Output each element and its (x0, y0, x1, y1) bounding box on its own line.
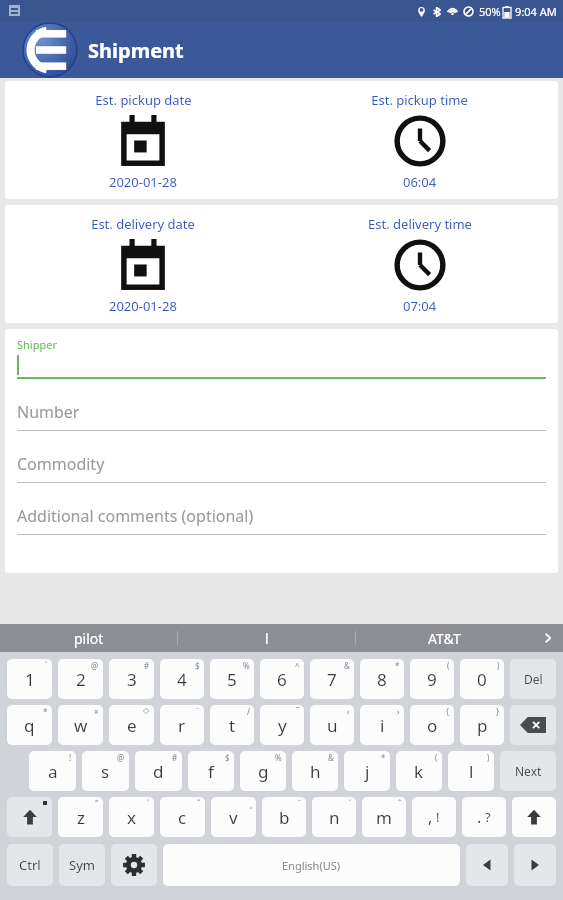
button[interactable]: c (160, 797, 205, 837)
button[interactable]: Est. delivery date (5, 205, 281, 323)
staticText: # (172, 752, 178, 763)
button[interactable]: Additional comments (optional) (17, 483, 546, 535)
button[interactable]: 5 (210, 659, 254, 699)
staticText: o (427, 714, 438, 737)
button[interactable]: Est. delivery time (281, 205, 558, 323)
button[interactable]: 6 (260, 659, 304, 699)
button[interactable]: Move cursor left (466, 844, 508, 886)
button[interactable]: Number (17, 379, 546, 431)
staticText: g (258, 760, 269, 783)
button[interactable]: p (460, 705, 504, 745)
button[interactable]: AT&T (356, 624, 533, 652)
button[interactable]: More suggestions (533, 624, 563, 652)
button[interactable]: English(US) (163, 844, 460, 886)
staticText: ¸ (250, 798, 252, 809)
staticText: ^ (295, 660, 300, 671)
staticText: 9 (427, 668, 437, 691)
button[interactable]: l (178, 624, 355, 652)
staticText: $ (225, 752, 230, 763)
staticText: & (344, 660, 350, 671)
staticText: t (229, 714, 236, 737)
button[interactable]: r (160, 705, 204, 745)
button[interactable]: g (240, 751, 286, 791)
staticText: Del (524, 671, 543, 687)
button[interactable]: 4 (160, 659, 204, 699)
button[interactable]: Est. pickup date (5, 81, 281, 199)
staticText: ¯ (296, 706, 300, 717)
button[interactable]: Sym (59, 844, 105, 886)
staticText: ˜ (95, 798, 99, 809)
button[interactable]: x (109, 797, 154, 837)
button[interactable]: 1 (7, 659, 52, 699)
button[interactable]: Shift (7, 797, 52, 837)
button[interactable]: b (262, 797, 306, 837)
button[interactable]: y (260, 705, 304, 745)
button[interactable]: l (448, 751, 494, 791)
staticText: % (275, 752, 282, 763)
staticText: % (243, 660, 250, 671)
button[interactable]: 9 (410, 659, 454, 699)
button[interactable]: Keyboard settings (111, 844, 157, 886)
button[interactable]: q (7, 705, 52, 745)
button[interactable]: , (412, 797, 456, 837)
button[interactable]: o (410, 705, 454, 745)
staticText: 50% (479, 4, 501, 19)
button[interactable]: Backspace (510, 705, 556, 745)
button[interactable]: 7 (310, 659, 354, 699)
staticText: k (414, 760, 424, 783)
button[interactable]: Del (510, 659, 556, 699)
staticText: i (380, 714, 385, 737)
staticText: 2020-01-28 (109, 173, 177, 191)
button[interactable]: Shift (512, 797, 556, 837)
button[interactable]: a (29, 751, 76, 791)
button[interactable]: n (312, 797, 356, 837)
button[interactable]: j (344, 751, 390, 791)
button[interactable]: k (396, 751, 442, 791)
button[interactable]: Shipper (17, 329, 546, 379)
button[interactable]: m (362, 797, 406, 837)
button[interactable]: u (310, 705, 354, 745)
button[interactable]: 0 (460, 659, 504, 699)
staticText: › (397, 706, 400, 717)
staticText: Est. delivery date (91, 215, 195, 233)
button[interactable]: Est. pickup time (281, 81, 558, 199)
button[interactable]: pilot (0, 624, 177, 652)
staticText: @ (117, 752, 125, 763)
button[interactable]: 2 (58, 659, 103, 699)
button[interactable]: 3 (109, 659, 154, 699)
button[interactable]: Move cursor right (514, 844, 556, 886)
staticText: 3 (127, 668, 137, 691)
button[interactable]: 8 (360, 659, 404, 699)
button[interactable]: f (188, 751, 234, 791)
staticText: l (469, 760, 474, 783)
button[interactable]: w (58, 705, 103, 745)
staticText: 0 (477, 668, 487, 691)
staticText: ) (497, 660, 500, 671)
staticText: d (153, 760, 164, 783)
staticText: f (208, 760, 214, 783)
button[interactable]: d (135, 751, 182, 791)
button[interactable]: s (82, 751, 129, 791)
button[interactable]: Ctrl (7, 844, 53, 886)
staticText: a (48, 760, 58, 783)
staticText: 06:04 (403, 173, 437, 191)
button[interactable]: i (360, 705, 404, 745)
staticText: @ (91, 660, 99, 671)
button[interactable]: v (211, 797, 256, 837)
staticText: q (24, 714, 35, 737)
staticText: Shipment (88, 37, 184, 64)
button[interactable]: Next (500, 751, 556, 791)
staticText: ? (485, 808, 491, 826)
staticText: ¨ (195, 706, 200, 717)
staticText: c (178, 806, 187, 829)
staticText: Number (17, 401, 80, 423)
button[interactable]: Commodity (17, 431, 546, 483)
button[interactable]: z (58, 797, 103, 837)
staticText: ( (447, 660, 450, 671)
staticText: English(US) (282, 858, 341, 873)
button[interactable]: t (210, 705, 254, 745)
button[interactable]: h (292, 751, 338, 791)
button[interactable]: . (462, 797, 506, 837)
button[interactable]: e (109, 705, 154, 745)
staticText: 6 (277, 668, 287, 691)
